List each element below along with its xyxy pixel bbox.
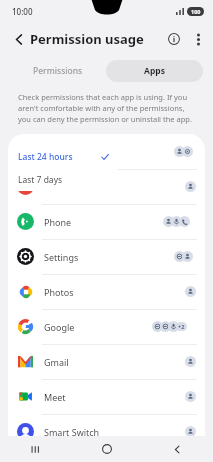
button[interactable]: Permissions — [10, 60, 106, 82]
staticText: Permission usage — [30, 30, 144, 48]
staticText: Gmail — [44, 356, 69, 368]
button[interactable]: Gmail — [8, 344, 205, 379]
button[interactable]: Apps — [106, 60, 203, 82]
staticText: Phone — [44, 216, 72, 228]
button[interactable]: Meet — [8, 379, 205, 414]
staticText: 100 — [191, 8, 201, 15]
button[interactable]: Phone — [8, 204, 205, 239]
button[interactable]: Information — [161, 26, 187, 52]
staticText: Photos — [44, 286, 74, 298]
staticText: +2 — [178, 323, 185, 330]
button[interactable]: Photos — [8, 274, 205, 309]
staticText: Smart Switch — [44, 426, 100, 438]
staticText: Google — [44, 321, 75, 333]
button[interactable]: Last 7 days — [8, 168, 118, 191]
button[interactable]: Last 24 hours — [8, 145, 118, 168]
staticText: Last 24 hours — [18, 151, 73, 163]
staticText: Settings — [44, 251, 79, 263]
staticText: 10:00 — [12, 6, 33, 17]
button[interactable]: Back — [142, 436, 213, 462]
button[interactable]: Recents — [0, 436, 71, 462]
staticText: Check permissions that each app is using… — [18, 92, 199, 124]
staticText: Last 7 days — [18, 174, 63, 186]
button[interactable]: Home — [71, 436, 142, 462]
button[interactable]: Settings — [8, 239, 205, 274]
staticText: Meet — [44, 391, 66, 403]
button[interactable]: More options — [187, 26, 209, 52]
button[interactable]: Smart Switch — [8, 414, 205, 449]
button[interactable] — [8, 134, 205, 169]
staticText: Contacts — [44, 181, 81, 193]
button[interactable]: Google — [8, 309, 205, 344]
button[interactable]: Contacts — [8, 169, 205, 204]
button[interactable]: Back — [6, 26, 32, 52]
staticText: Apps — [144, 65, 165, 77]
staticText: Permissions — [33, 65, 83, 77]
